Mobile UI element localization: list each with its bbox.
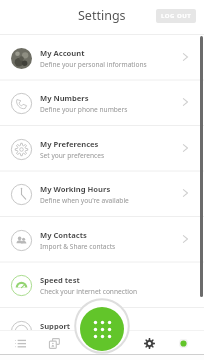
staticText: My Preferences: [40, 139, 99, 149]
button[interactable]: My Preferences: [0, 126, 204, 172]
staticText: Settings: [78, 7, 126, 24]
button[interactable]: Settings: [136, 330, 162, 354]
button[interactable]: My Account: [0, 35, 204, 81]
staticText: Find answers to your questions: [40, 333, 137, 342]
button[interactable]: Support: [0, 308, 204, 354]
staticText: Set your preferences: [40, 151, 105, 160]
button[interactable]: Dialpad: [80, 307, 124, 351]
button[interactable]: My Contacts: [0, 217, 204, 263]
button[interactable]: LOG OUT: [156, 9, 196, 23]
button[interactable]: My Working Hours: [0, 171, 204, 217]
staticText: My Numbers: [40, 93, 89, 103]
button[interactable]: Contact cards: [41, 330, 67, 354]
staticText: Support: [40, 321, 71, 331]
staticText: Define when you're available: [40, 196, 129, 205]
button[interactable]: Speed test: [0, 262, 204, 308]
button[interactable]: My Numbers: [0, 80, 204, 126]
staticText: Speed test: [40, 275, 80, 285]
staticText: Import & Share contacts: [40, 242, 116, 251]
staticText: Check your internet connection: [40, 287, 138, 296]
staticText: Define your personal informations: [40, 60, 147, 69]
staticText: Define your phone numbers: [40, 105, 128, 114]
button[interactable]: List: [7, 330, 33, 354]
staticText: LOG OUT: [161, 12, 192, 20]
staticText: My Account: [40, 48, 85, 58]
button[interactable]: Status: [170, 330, 196, 354]
staticText: My Contacts: [40, 230, 87, 240]
staticText: My Working Hours: [40, 184, 111, 194]
